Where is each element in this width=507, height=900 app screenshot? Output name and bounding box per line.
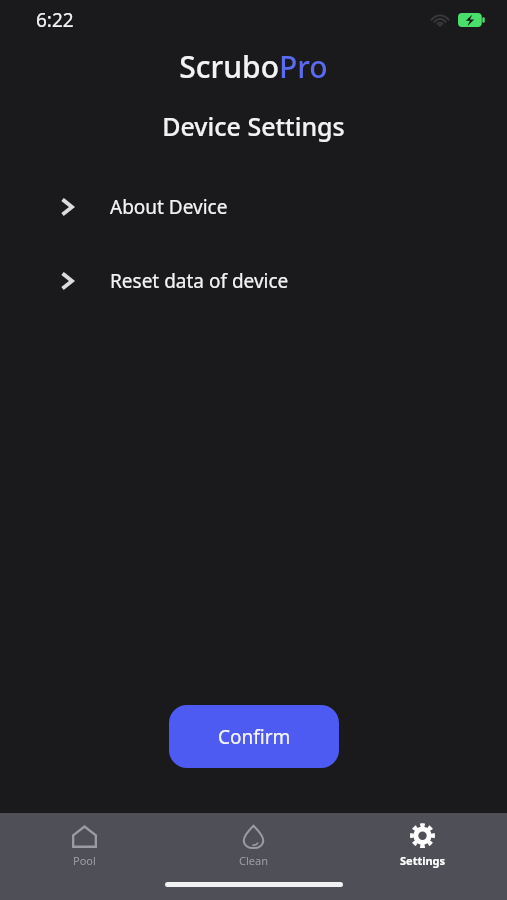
button[interactable]: Pool	[0, 821, 169, 870]
staticText: 6:22	[36, 7, 74, 33]
button[interactable]: Clean	[169, 821, 338, 870]
other: Clean	[240, 823, 267, 850]
staticText: ScruboPro	[0, 46, 507, 87]
button[interactable]: Settings	[338, 821, 507, 870]
button[interactable]: Confirm	[169, 705, 339, 768]
staticText: Device Settings	[0, 109, 507, 143]
staticText: About Device	[110, 194, 228, 220]
staticText: Reset data of device	[110, 268, 289, 294]
button[interactable]: About Device	[0, 185, 507, 229]
staticText: Clean	[239, 853, 268, 868]
button[interactable]: Reset data of device	[0, 259, 507, 303]
other: Settings	[409, 823, 436, 850]
staticText: Confirm	[218, 724, 291, 750]
staticText: Settings	[400, 853, 446, 868]
other: Pool	[71, 823, 98, 850]
staticText: Pool	[73, 853, 96, 868]
